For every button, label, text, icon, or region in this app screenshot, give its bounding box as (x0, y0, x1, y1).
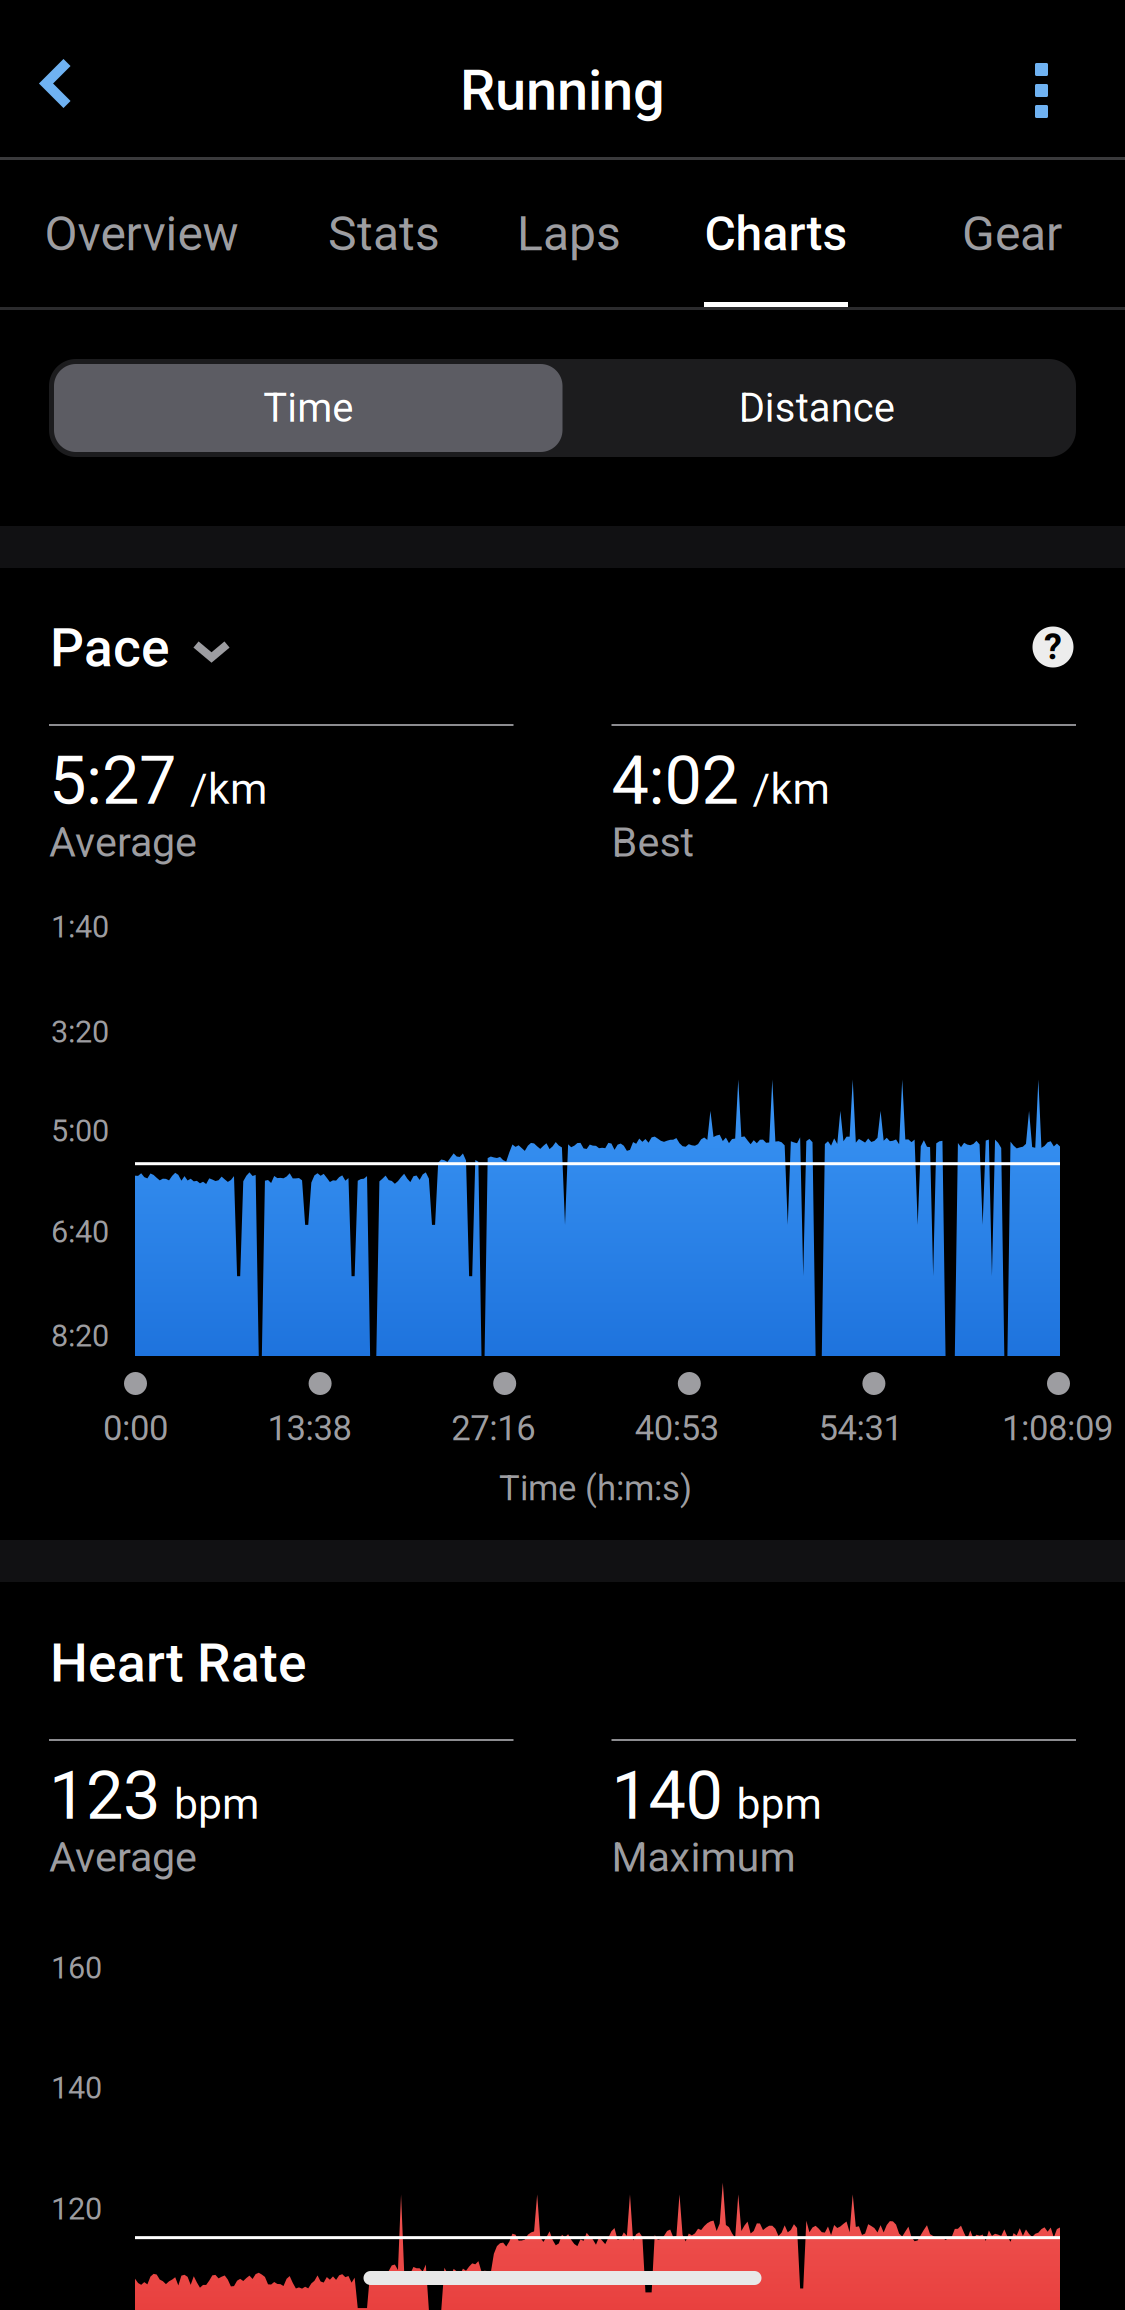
staticText: 6:40 (51, 1214, 109, 1250)
button[interactable]: Stats (283, 160, 485, 307)
staticText: Average (49, 1833, 197, 1881)
staticText: bpm (174, 1779, 259, 1829)
staticText: 140 (51, 2070, 102, 2106)
button[interactable]: More options (985, 0, 1125, 157)
staticText: Laps (517, 206, 621, 262)
staticText: bpm (736, 1779, 821, 1829)
staticText: 0:00 (103, 1408, 168, 1449)
staticText: Time (h:m:s) (499, 1468, 692, 1509)
staticText: 54:31 (818, 1408, 902, 1449)
button[interactable]: Pace (50, 618, 350, 678)
staticText: Distance (739, 385, 895, 431)
staticText: 40:53 (635, 1408, 719, 1449)
staticText: ? (1044, 626, 1062, 668)
staticText: Time (263, 385, 353, 431)
staticText: 5:27 (49, 742, 176, 820)
button[interactable]: Charts (653, 160, 899, 307)
button[interactable]: Overview (0, 160, 283, 307)
staticText: 160 (51, 1950, 102, 1986)
staticText: Overview (44, 206, 238, 262)
staticText: Heart Rate (50, 1632, 307, 1694)
button[interactable]: Gear (899, 160, 1125, 307)
staticText: Pace (50, 617, 170, 679)
staticText: Running (460, 58, 665, 123)
staticText: 27:16 (451, 1408, 535, 1449)
staticText: 13:38 (268, 1408, 352, 1449)
staticText: Stats (328, 206, 440, 262)
staticText: 120 (51, 2191, 102, 2227)
staticText: 140 (611, 1757, 722, 1835)
staticText: Average (49, 818, 197, 866)
staticText: Gear (962, 206, 1062, 262)
button[interactable]: Time (54, 364, 562, 452)
button[interactable]: Laps (485, 160, 653, 307)
staticText: Charts (704, 206, 847, 262)
staticText: 4:02 (611, 742, 738, 820)
staticText: 1:08:09 (1002, 1408, 1113, 1449)
button[interactable]: Back (0, 0, 117, 157)
staticText: 3:20 (51, 1014, 109, 1050)
staticText: Best (611, 818, 694, 866)
staticText: /km (752, 764, 829, 814)
staticText: 8:20 (51, 1318, 109, 1354)
staticText: 5:00 (51, 1113, 109, 1149)
staticText: /km (190, 764, 267, 814)
staticText: 1:40 (51, 909, 109, 945)
staticText: 123 (49, 1757, 160, 1835)
button[interactable]: Distance (562, 364, 1071, 452)
button[interactable]: Help (1013, 607, 1093, 687)
staticText: Maximum (611, 1833, 795, 1881)
